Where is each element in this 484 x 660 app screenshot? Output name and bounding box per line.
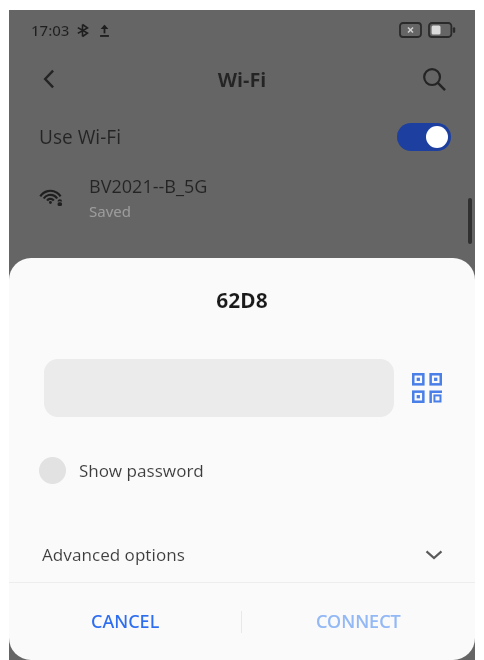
button[interactable]: Scan QR code [406, 367, 448, 409]
staticText: 17:03 [31, 20, 70, 40]
staticText: CANCEL [91, 609, 160, 634]
staticText: Show password [79, 459, 204, 482]
staticText: Use Wi-Fi [39, 124, 397, 150]
button[interactable]: Search [413, 58, 455, 100]
button[interactable]: Show password [9, 447, 475, 493]
staticText: CONNECT [316, 609, 401, 634]
button[interactable]: CANCEL [9, 583, 241, 660]
staticText: 62D8 [9, 286, 475, 315]
staticText: Advanced options [42, 543, 423, 566]
staticText: Saved [89, 201, 131, 221]
button[interactable]: Advanced options [9, 531, 475, 577]
button[interactable]: CONNECT [242, 583, 475, 660]
button[interactable]: Back [29, 58, 71, 100]
staticText: Wi-Fi [71, 66, 413, 93]
button[interactable]: Use Wi-Fi [9, 108, 475, 166]
staticText: BV2021--B_5G [89, 174, 208, 199]
button[interactable]: BV2021--B_5G [9, 166, 475, 228]
